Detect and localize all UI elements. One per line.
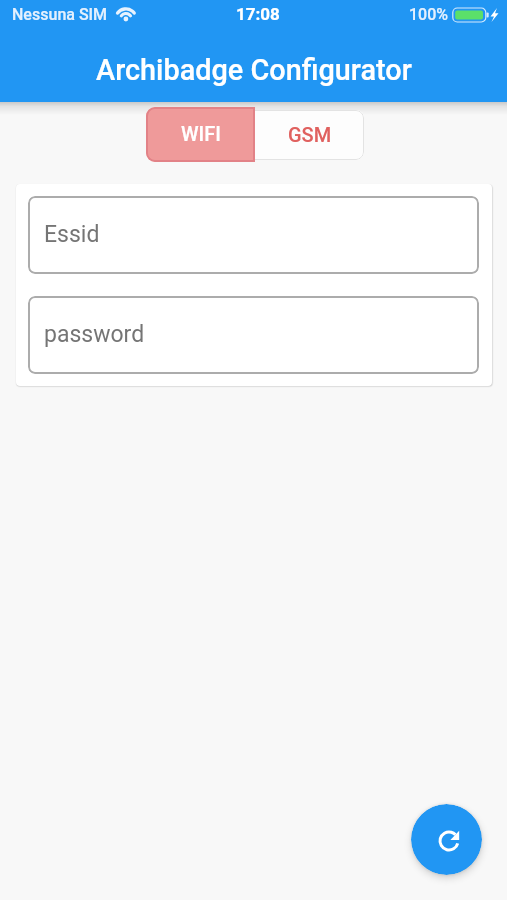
staticText: password (44, 321, 145, 348)
button[interactable]: GSM (255, 110, 364, 160)
button[interactable]: Essid (28, 196, 479, 274)
staticText: Nessuna SIM (12, 5, 108, 24)
staticText: WIFI (181, 122, 221, 145)
staticText: GSM (288, 123, 332, 146)
button[interactable]: WIFI (146, 107, 255, 162)
button[interactable]: Refresh (411, 804, 482, 875)
staticText: 17:08 (236, 4, 280, 24)
staticText: 100% (409, 5, 449, 24)
button[interactable]: password (28, 296, 479, 374)
staticText: Essid (44, 221, 100, 248)
staticText: Archibadge Configurator (96, 53, 412, 87)
